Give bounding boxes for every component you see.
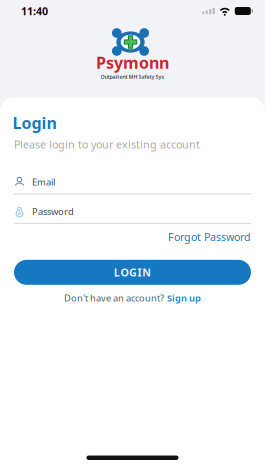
button[interactable]: LOGIN <box>14 260 251 285</box>
staticText: Please login to your existing account <box>14 137 200 151</box>
staticText: Password <box>32 205 74 217</box>
button[interactable]: Email <box>14 175 251 194</box>
staticText: Forgot Password <box>168 230 251 244</box>
button[interactable]: Sign up <box>167 292 201 304</box>
staticText: Psymonn <box>96 52 169 73</box>
staticText: Email <box>32 176 55 188</box>
staticText: Don't have an account? <box>64 292 164 304</box>
button[interactable]: Forgot Password <box>168 230 251 244</box>
staticText: Login <box>12 112 56 133</box>
staticText: Outpatient MH Safety Sys <box>100 73 164 80</box>
staticText: 11:40 <box>21 4 48 18</box>
staticText: Sign up <box>167 292 201 304</box>
staticText: LOGIN <box>114 265 151 279</box>
button[interactable]: Password <box>14 204 251 224</box>
